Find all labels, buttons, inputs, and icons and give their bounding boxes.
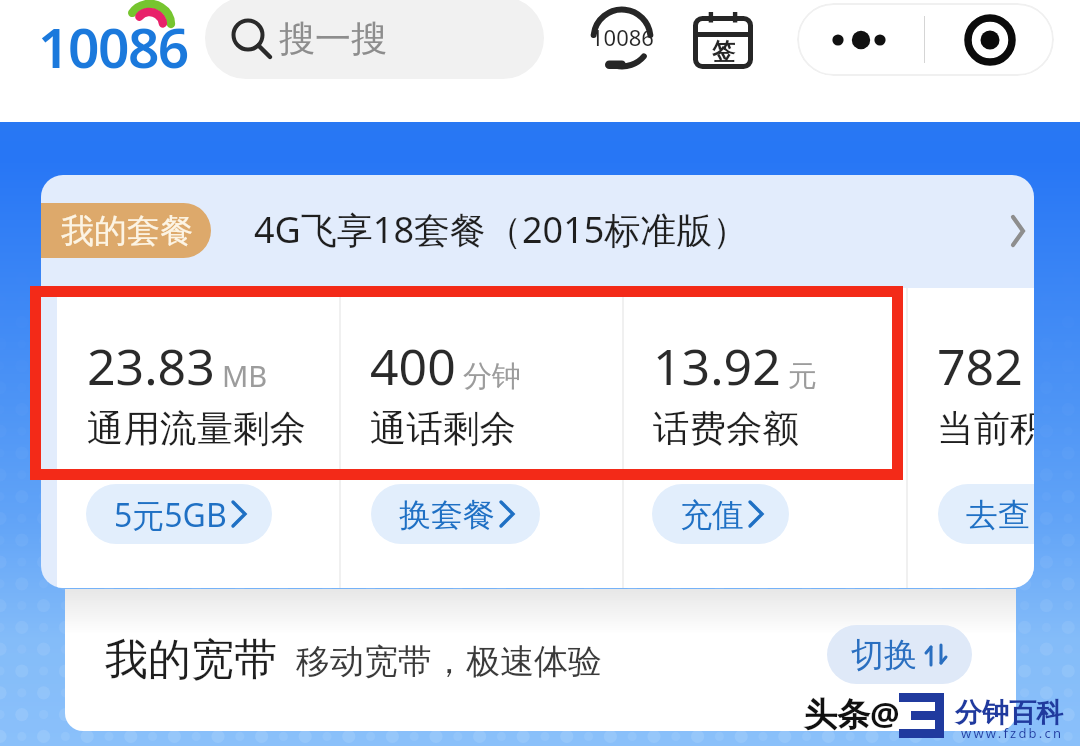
staticText: 去查 — [966, 495, 1030, 535]
staticText: 元 — [788, 358, 817, 395]
staticText: 我的宽带 — [105, 633, 277, 687]
staticText: 4G飞享18套餐（2015标准版） — [254, 205, 749, 254]
staticText: 782 — [937, 332, 1023, 400]
staticText: 搜一搜 — [279, 16, 387, 61]
button[interactable]: 400 — [340, 288, 623, 478]
staticText: 5元5GB — [114, 493, 227, 537]
staticText: 头条@ — [804, 691, 900, 736]
button[interactable]: 10086 — [37, 0, 197, 76]
staticText: 换套餐 — [399, 495, 495, 535]
button[interactable]: Check in — [688, 6, 758, 76]
staticText: 切换 — [851, 634, 917, 676]
staticText: 400 — [370, 332, 456, 400]
staticText: 移动宽带，极速体验 — [296, 640, 602, 683]
button[interactable]: More — [797, 3, 924, 76]
staticText: 13.92 — [653, 332, 781, 400]
staticText: 分钟 — [463, 358, 521, 395]
button[interactable]: 我的套餐 — [41, 203, 211, 258]
staticText: 通话剩余 — [370, 406, 516, 452]
button[interactable]: 13.92 — [623, 288, 906, 478]
staticText: 10086 — [591, 22, 654, 52]
button[interactable]: 充值 — [652, 484, 789, 544]
staticText: 通用流量剩余 — [87, 406, 306, 452]
staticText: MB — [222, 356, 268, 395]
button[interactable]: 搜一搜 — [205, 0, 544, 79]
staticText: 10086 — [38, 9, 188, 84]
staticText: 23.83 — [87, 332, 215, 400]
staticText: www.fzdb.cn — [961, 724, 1064, 742]
staticText: 充值 — [680, 495, 744, 535]
button[interactable]: 5元5GB — [86, 484, 272, 544]
button[interactable]: 换套餐 — [371, 484, 540, 544]
button[interactable]: 切换 — [827, 625, 972, 684]
button[interactable]: Call 10086 — [588, 4, 656, 72]
button[interactable]: 去查 — [938, 484, 1034, 544]
staticText: 话费余额 — [653, 406, 799, 452]
staticText: 我的套餐 — [61, 210, 193, 252]
button[interactable]: 782 — [907, 288, 1034, 478]
staticText: 签 — [712, 37, 735, 66]
button[interactable]: 23.83 — [57, 288, 340, 478]
staticText: 分钟百科 — [955, 696, 1063, 730]
button[interactable]: Profile — [925, 3, 1054, 76]
staticText: 当前积 — [937, 406, 1034, 452]
button[interactable]: Package details — [971, 197, 1034, 261]
button[interactable]: 我的宽带 — [65, 589, 1016, 731]
